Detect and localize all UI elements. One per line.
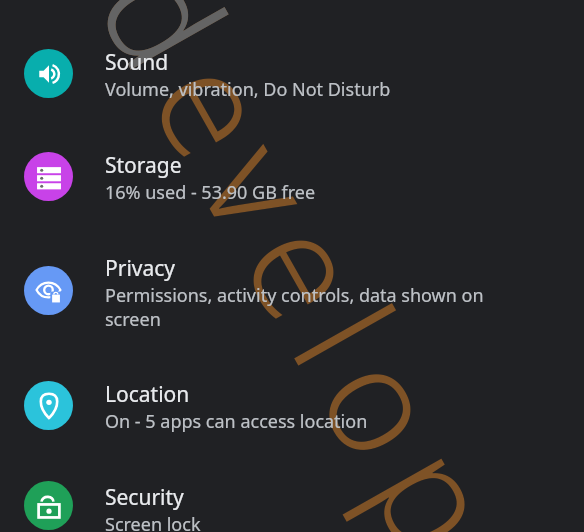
staticText: 16% used - 53.90 GB free: [105, 180, 316, 205]
staticText: Volume, vibration, Do Not Disturb: [105, 77, 391, 102]
button[interactable]: Privacy: [0, 254, 584, 331]
staticText: Storage: [105, 151, 182, 180]
button[interactable]: Security: [0, 483, 584, 532]
staticText: Privacy: [105, 254, 176, 283]
button[interactable]: Sound: [0, 48, 584, 102]
staticText: Sound: [105, 48, 169, 77]
staticText: On - 5 apps can access location: [105, 409, 368, 434]
staticText: Location: [105, 380, 190, 409]
staticText: Security: [105, 483, 184, 512]
staticText: Screen lock: [105, 512, 201, 532]
button[interactable]: Storage: [0, 151, 584, 205]
staticText: Permissions, activity controls, data sho…: [105, 283, 515, 331]
button[interactable]: Location: [0, 380, 584, 434]
